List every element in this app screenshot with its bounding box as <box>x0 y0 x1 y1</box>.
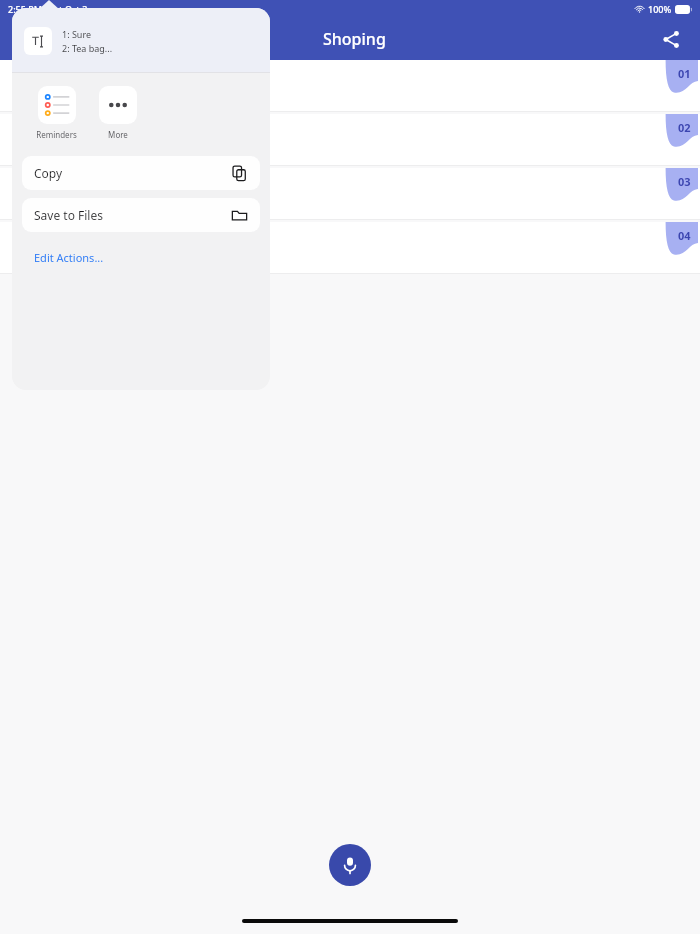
staticText: Shoping <box>323 28 386 50</box>
staticText: 02 <box>678 120 691 135</box>
staticText: 01 <box>678 66 691 81</box>
button[interactable]: Voice input <box>329 844 371 886</box>
button[interactable]: Reminders <box>36 86 77 140</box>
staticText: Reminders <box>36 129 77 140</box>
staticText: 2: Tea bag... <box>62 42 113 54</box>
staticText: Save to Files <box>34 207 103 223</box>
staticText: Copy <box>34 165 63 181</box>
staticText: Edit Actions... <box>34 250 104 265</box>
button[interactable]: 04 <box>0 222 700 274</box>
staticText: 100% <box>648 3 672 15</box>
staticText: 1: Sure <box>62 28 92 40</box>
button[interactable]: More <box>99 86 137 140</box>
staticText: 04 <box>678 228 691 243</box>
button[interactable]: 01 <box>0 60 700 112</box>
staticText: More <box>108 129 128 140</box>
staticText: 03 <box>678 174 691 189</box>
button[interactable]: Save to Files <box>22 198 260 232</box>
staticText: 2:55 PM Sat Oct 3 <box>8 3 88 15</box>
button[interactable]: 03 <box>0 168 700 220</box>
button[interactable]: Edit Actions... <box>12 244 270 270</box>
button[interactable]: 02 <box>0 114 700 166</box>
button[interactable]: Copy <box>22 156 260 190</box>
button[interactable]: Share <box>654 22 688 56</box>
